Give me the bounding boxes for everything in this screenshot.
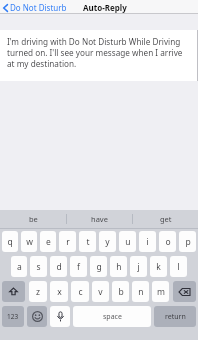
- staticText: t: [86, 236, 90, 248]
- button[interactable]: q: [2, 231, 18, 252]
- button[interactable]: space: [73, 306, 151, 327]
- button[interactable]: n: [132, 281, 149, 302]
- button[interactable]: Emoji: [27, 306, 47, 327]
- button[interactable]: g: [90, 256, 107, 277]
- button[interactable]: o: [159, 231, 176, 252]
- button[interactable]: v: [92, 281, 109, 302]
- button[interactable]: b: [112, 281, 129, 302]
- button[interactable]: return: [154, 306, 196, 327]
- button[interactable]: a: [11, 256, 27, 277]
- button[interactable]: z: [29, 281, 47, 302]
- staticText: q: [7, 236, 13, 248]
- button[interactable]: s: [30, 256, 47, 277]
- button[interactable]: Dictation: [50, 306, 70, 327]
- staticText: y: [105, 236, 110, 248]
- staticText: v: [98, 286, 103, 298]
- button[interactable]: i: [139, 231, 156, 252]
- staticText: z: [36, 286, 40, 298]
- button[interactable]: r: [59, 231, 76, 252]
- staticText: l: [177, 261, 180, 273]
- button[interactable]: c: [71, 281, 89, 302]
- staticText: j: [137, 261, 140, 273]
- staticText: a: [17, 261, 22, 273]
- staticText: b: [118, 286, 124, 298]
- staticText: i: [146, 236, 149, 248]
- staticText: d: [56, 261, 62, 273]
- staticText: s: [36, 261, 41, 273]
- staticText: x: [57, 286, 62, 298]
- staticText: return: [165, 312, 186, 322]
- staticText: Do Not Disturb: [10, 2, 67, 13]
- button[interactable]: l: [170, 256, 187, 277]
- staticText: be: [29, 214, 38, 224]
- button[interactable]: y: [99, 231, 116, 252]
- staticText: w: [26, 236, 33, 248]
- button[interactable]: e: [40, 231, 56, 252]
- button[interactable]: be: [0, 210, 66, 228]
- staticText: n: [138, 286, 144, 298]
- button[interactable]: get: [133, 210, 198, 228]
- button[interactable]: w: [21, 231, 37, 252]
- button[interactable]: d: [50, 256, 67, 277]
- staticText: c: [78, 286, 83, 298]
- button[interactable]: k: [150, 256, 167, 277]
- staticText: I'm driving with Do Not Disturb While Dr…: [7, 36, 191, 69]
- staticText: o: [165, 236, 171, 248]
- button[interactable]: 123: [2, 306, 24, 327]
- button[interactable]: u: [119, 231, 136, 252]
- button[interactable]: p: [179, 231, 196, 252]
- staticText: space: [103, 312, 122, 322]
- staticText: 123: [7, 312, 19, 321]
- button[interactable]: I'm driving with Do Not Disturb While Dr…: [0, 30, 198, 81]
- staticText: u: [125, 236, 131, 248]
- staticText: get: [160, 214, 172, 224]
- staticText: Auto-Reply: [83, 2, 127, 13]
- button[interactable]: t: [79, 231, 96, 252]
- staticText: g: [96, 261, 102, 273]
- button[interactable]: j: [130, 256, 147, 277]
- staticText: p: [185, 236, 191, 248]
- staticText: e: [46, 236, 51, 248]
- button[interactable]: x: [50, 281, 68, 302]
- staticText: h: [116, 261, 122, 273]
- staticText: f: [77, 261, 80, 273]
- staticText: r: [66, 236, 70, 248]
- button[interactable]: h: [110, 256, 127, 277]
- button[interactable]: Backspace: [173, 281, 196, 302]
- staticText: have: [91, 214, 108, 224]
- button[interactable]: Shift: [2, 281, 25, 302]
- staticText: m: [157, 286, 165, 298]
- button[interactable]: Do Not Disturb: [2, 2, 67, 13]
- button[interactable]: have: [67, 210, 132, 228]
- button[interactable]: f: [70, 256, 87, 277]
- staticText: k: [156, 261, 161, 273]
- button[interactable]: m: [152, 281, 169, 302]
